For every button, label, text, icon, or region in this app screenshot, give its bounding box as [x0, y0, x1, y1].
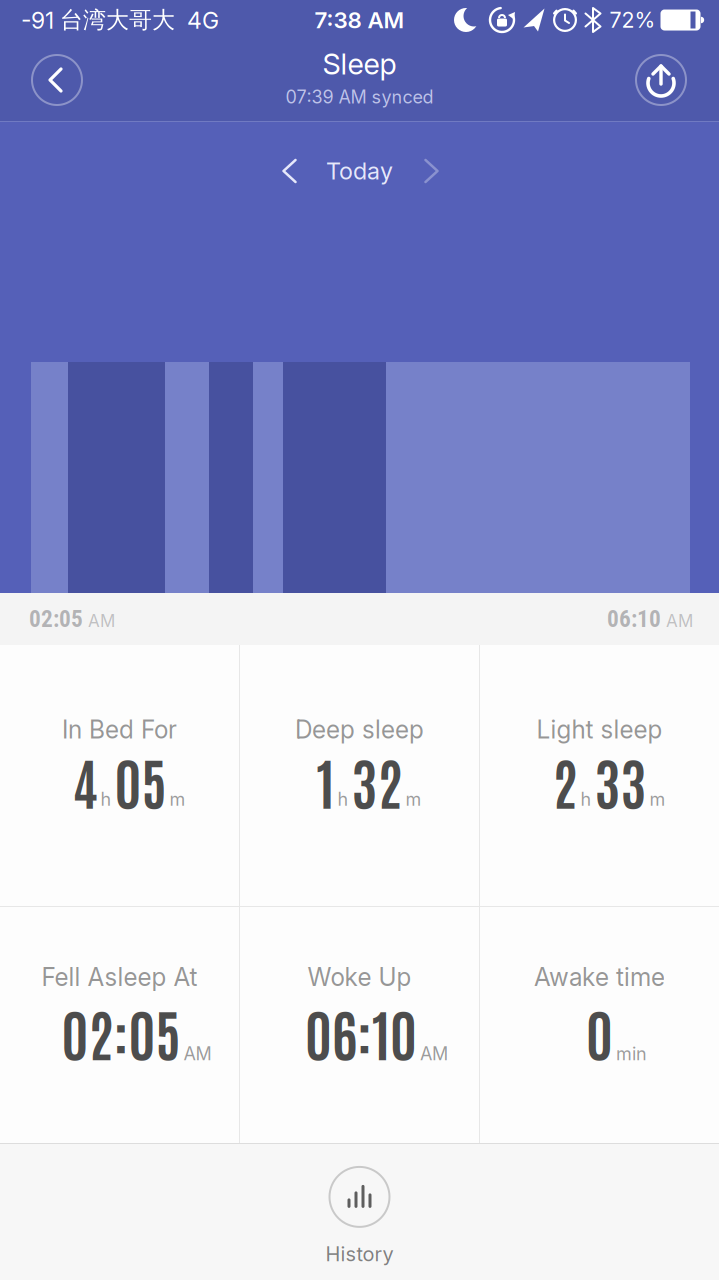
staticText: Deep sleep	[295, 715, 424, 744]
staticText: 02:05	[61, 997, 180, 1068]
staticText: 33	[594, 746, 646, 816]
staticText: AM	[661, 610, 693, 631]
button[interactable]: History	[284, 1164, 434, 1268]
staticText: min	[616, 1043, 647, 1065]
staticText: 06:10	[607, 605, 661, 633]
staticText: 32	[351, 746, 402, 816]
staticText: Light sleep	[536, 715, 662, 744]
staticText: 07:39 AM synced	[285, 86, 433, 108]
staticText: h	[337, 788, 348, 810]
staticText: -91 台湾大哥大 4G	[21, 5, 219, 34]
staticText: History	[325, 1242, 393, 1266]
staticText: Today	[326, 157, 393, 185]
staticText: In Bed For	[62, 715, 177, 744]
staticText: Sleep	[322, 46, 396, 82]
staticText: m	[405, 788, 421, 810]
staticText: 2	[552, 746, 577, 816]
staticText: Fell Asleep At	[41, 962, 197, 992]
staticText: m	[169, 788, 185, 810]
button[interactable]: Share	[634, 53, 688, 107]
staticText: h	[100, 788, 111, 810]
staticText: 0	[586, 997, 613, 1068]
staticText: 4	[72, 746, 97, 816]
staticText: m	[649, 788, 665, 810]
staticText: Awake time	[534, 962, 665, 992]
button[interactable]: Back	[30, 53, 84, 107]
staticText: 1	[316, 746, 334, 816]
staticText: 7:38 AM	[314, 6, 404, 34]
staticText: 06:10	[305, 997, 417, 1068]
staticText: AM	[83, 610, 115, 631]
staticText: AM	[183, 1043, 211, 1065]
staticText: Woke Up	[307, 962, 411, 992]
staticText: 02:05	[29, 605, 83, 633]
staticText: h	[580, 788, 591, 810]
button[interactable]: Next day	[413, 153, 449, 189]
staticText: 72%	[609, 7, 655, 33]
button[interactable]: Previous day	[271, 153, 307, 189]
staticText: AM	[420, 1043, 448, 1065]
staticText: 05	[114, 746, 166, 816]
